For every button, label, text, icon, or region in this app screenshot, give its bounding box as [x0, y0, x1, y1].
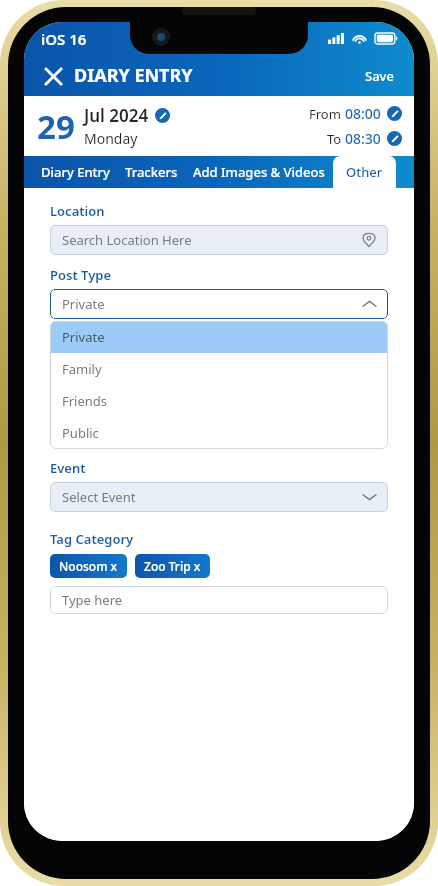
staticText: Tag Category: [50, 530, 134, 548]
button[interactable]: Select Event: [50, 482, 388, 512]
button[interactable]: Private: [50, 289, 388, 319]
staticText: Save: [365, 67, 394, 85]
button[interactable]: Diary Entry: [41, 156, 110, 188]
button[interactable]: Edit: [387, 131, 402, 146]
button[interactable]: Trackers: [125, 156, 178, 188]
staticText: Noosom x: [59, 558, 118, 574]
staticText: Trackers: [125, 163, 178, 181]
button[interactable]: Friends: [50, 385, 388, 417]
staticText: Type here: [62, 591, 123, 609]
button[interactable]: Search Location Here: [50, 225, 388, 255]
staticText: From: [309, 105, 345, 123]
staticText: To: [327, 130, 345, 148]
button[interactable]: Public: [50, 417, 388, 449]
staticText: 08:00: [345, 104, 381, 123]
button[interactable]: Family: [50, 353, 388, 385]
staticText: 29: [37, 104, 75, 149]
button[interactable]: Private: [50, 321, 388, 353]
staticText: Zoo Trip x: [144, 558, 201, 574]
staticText: Other: [346, 163, 383, 181]
staticText: Location: [50, 202, 105, 220]
button[interactable]: Save: [359, 62, 400, 90]
button[interactable]: Edit: [155, 108, 170, 123]
staticText: 08:30: [345, 129, 381, 148]
staticText: Friends: [62, 392, 108, 410]
staticText: iOS 16: [41, 29, 87, 49]
staticText: Search Location Here: [62, 231, 192, 249]
staticText: Private: [62, 295, 105, 313]
staticText: Diary Entry: [41, 163, 110, 181]
button[interactable]: Other: [333, 156, 396, 188]
button[interactable]: Edit: [387, 106, 402, 121]
staticText: Select Event: [62, 488, 136, 506]
staticText: Post Type: [50, 266, 112, 284]
staticText: Monday: [84, 129, 138, 148]
button[interactable]: Add Images & Videos: [193, 156, 325, 188]
staticText: Jul 2024: [84, 104, 149, 127]
staticText: Public: [62, 424, 99, 442]
staticText: Family: [62, 360, 102, 378]
button[interactable]: Close: [38, 61, 68, 91]
button[interactable]: Zoo Trip x: [135, 554, 210, 578]
staticText: Event: [50, 459, 86, 477]
staticText: DIARY ENTRY: [74, 63, 193, 88]
staticText: Private: [62, 328, 105, 346]
staticText: Add Images & Videos: [193, 163, 325, 181]
button[interactable]: Type here: [50, 586, 388, 614]
button[interactable]: Noosom x: [50, 554, 127, 578]
